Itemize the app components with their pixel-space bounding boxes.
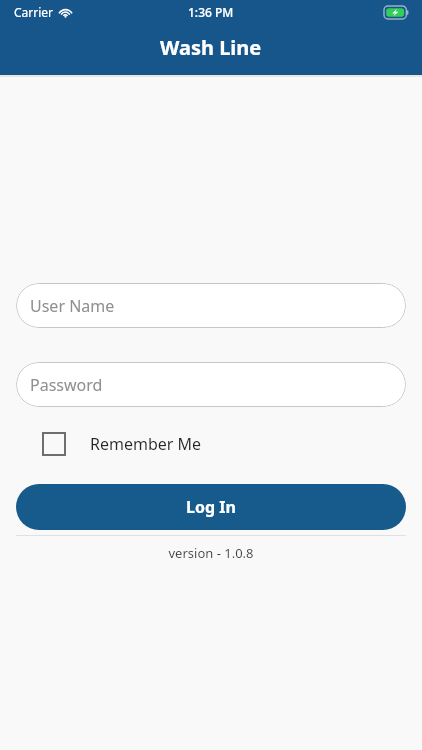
staticText: Remember Me <box>90 433 202 455</box>
staticText: Carrier <box>14 4 54 20</box>
staticText: Log In <box>186 496 236 518</box>
button[interactable]: Log In <box>16 484 406 530</box>
button[interactable]: Password <box>16 362 406 407</box>
button[interactable]: Remember Me <box>42 426 202 462</box>
staticText: User Name <box>30 295 115 317</box>
button[interactable]: User Name <box>16 283 406 328</box>
staticText: Password <box>30 374 103 396</box>
staticText: version - 1.0.8 <box>0 544 422 562</box>
staticText: 1:36 PM <box>188 4 234 20</box>
staticText: Wash Line <box>160 34 262 61</box>
